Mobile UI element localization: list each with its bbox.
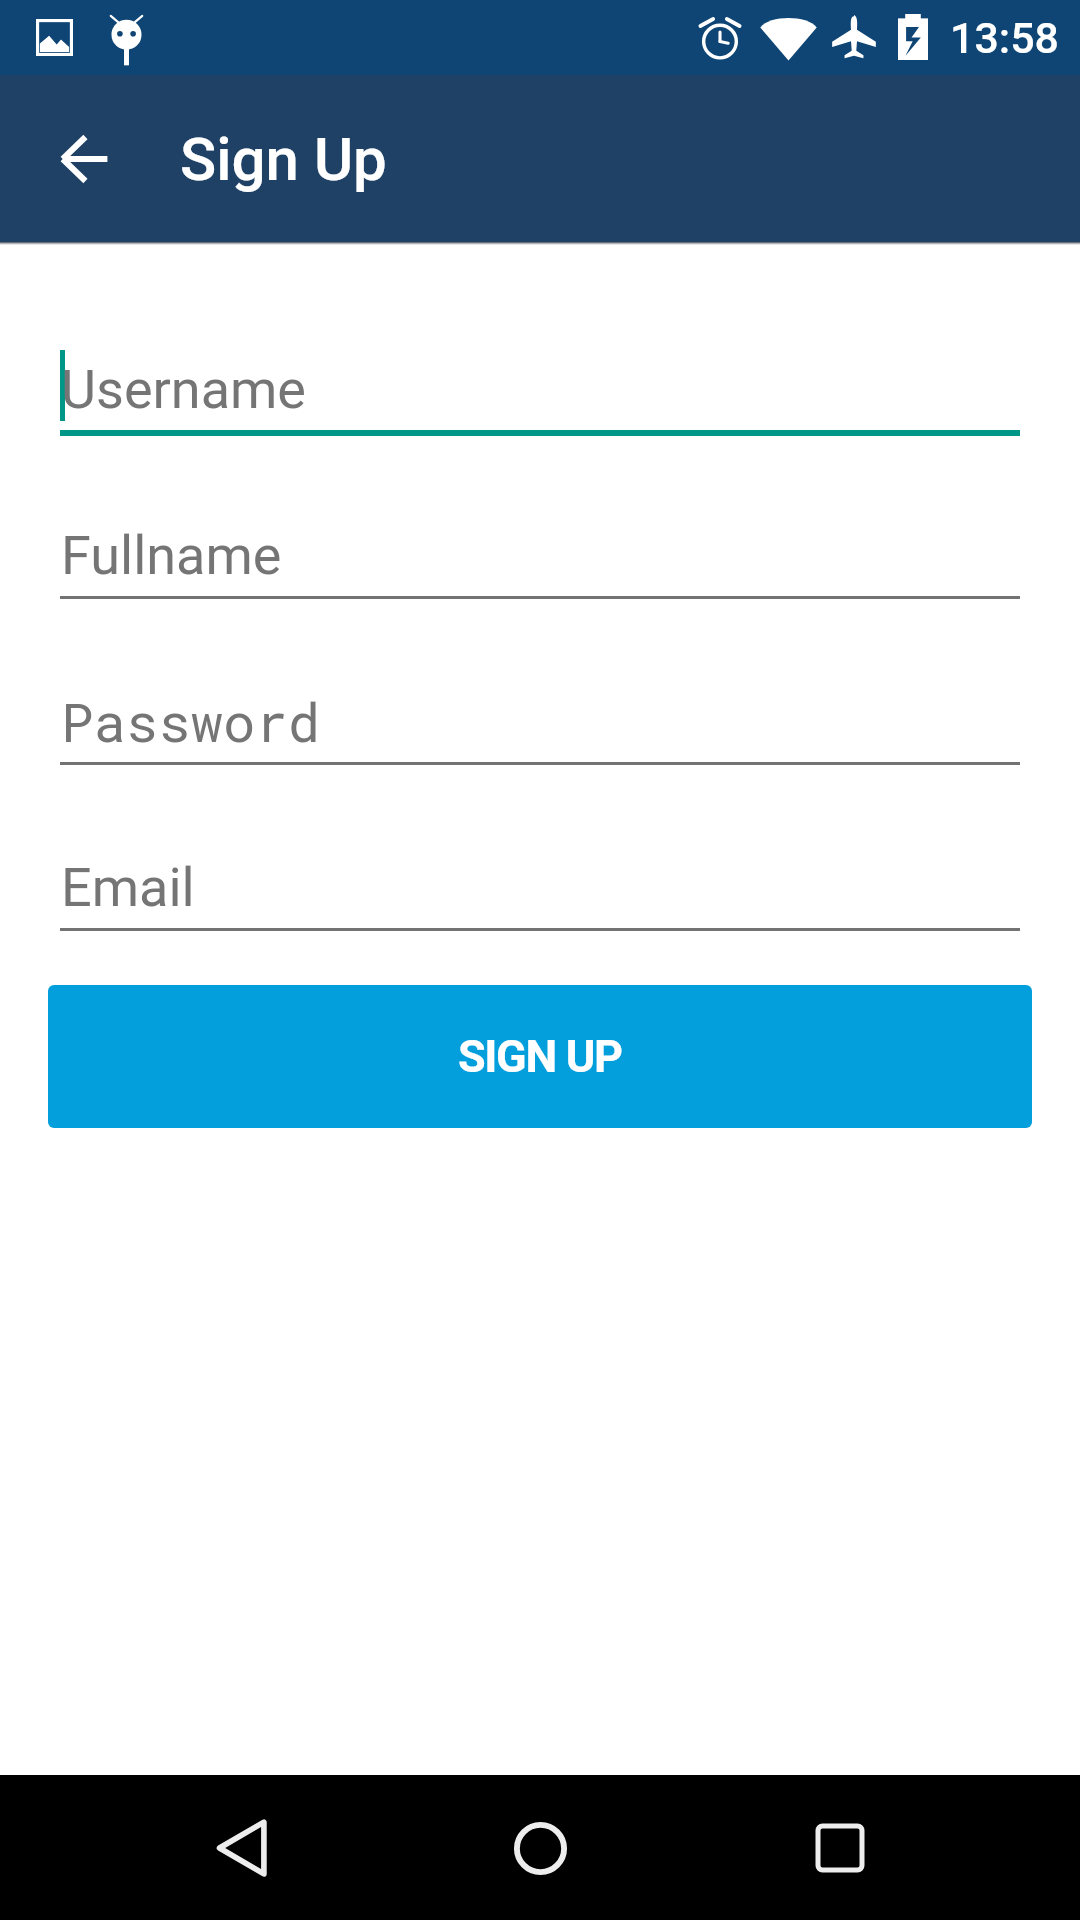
button[interactable]: Username [0,338,1080,436]
button[interactable]: SIGN UP [48,985,1032,1128]
button[interactable]: Home [468,1776,612,1920]
staticText: SIGN UP [458,1030,622,1083]
button[interactable]: Back [169,1776,313,1920]
staticText: Email [61,856,195,919]
staticText: Fullname [61,524,282,587]
button[interactable]: Navigate up [30,105,138,213]
button[interactable]: Fullname [0,504,1080,599]
staticText: Password [61,685,321,756]
button[interactable]: Email [0,836,1080,931]
staticText: Sign Up [180,124,387,194]
button[interactable]: Recent apps [768,1776,912,1920]
staticText: Username [61,358,307,421]
staticText: 13:58 [950,13,1059,63]
button[interactable]: Password [0,670,1080,765]
